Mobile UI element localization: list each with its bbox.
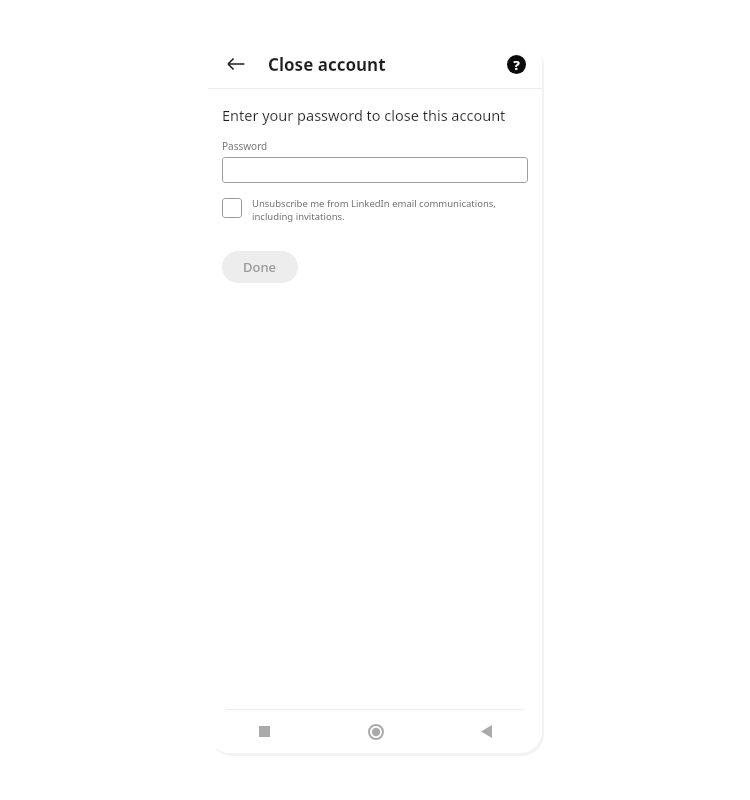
staticText: Enter your password to close this accoun…: [222, 105, 506, 125]
button[interactable]: [222, 157, 528, 183]
staticText: Unsubscribe me from LinkedIn email commu…: [252, 197, 528, 223]
staticText: Done: [243, 258, 277, 276]
button[interactable]: Unsubscribe me from LinkedIn email commu…: [222, 197, 528, 223]
staticText: Close account: [268, 53, 386, 76]
button[interactable]: Back: [218, 46, 254, 82]
button[interactable]: Done: [222, 251, 298, 283]
staticText: ?: [513, 56, 520, 74]
button[interactable]: Recent apps: [208, 710, 320, 753]
staticText: Password: [222, 139, 268, 153]
button[interactable]: Back: [431, 710, 542, 753]
button[interactable]: Help: [500, 48, 532, 80]
button[interactable]: Home: [320, 710, 431, 753]
